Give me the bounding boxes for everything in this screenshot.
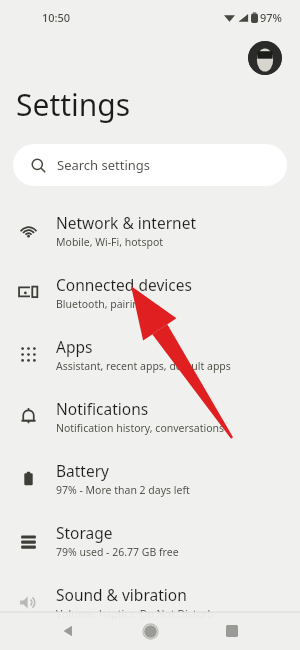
staticText: 10:50 (42, 10, 71, 25)
button[interactable]: Notifications (0, 385, 300, 447)
staticText: Bluetooth, pairing (56, 297, 146, 311)
button[interactable]: Search settings (13, 144, 287, 186)
button[interactable]: Recent apps (212, 612, 252, 650)
staticText: Settings (16, 84, 131, 125)
staticText: Sound & vibration (56, 584, 187, 605)
staticText: Apps (56, 336, 93, 357)
staticText: Connected devices (56, 274, 192, 295)
button[interactable]: Account (248, 41, 282, 75)
staticText: Search settings (57, 156, 151, 174)
staticText: 79% used - 26.77 GB free (56, 545, 179, 559)
staticText: Notification history, conversations (56, 421, 225, 435)
button[interactable]: Home (130, 612, 170, 650)
staticText: Volume, haptics, Do Not Disturb (56, 607, 214, 621)
staticText: 97% (260, 10, 282, 25)
staticText: Notifications (56, 398, 149, 419)
button[interactable]: Connected devices (0, 261, 300, 323)
staticText: 97% - More than 2 days left (56, 483, 190, 497)
staticText: Mobile, Wi-Fi, hotspot (56, 235, 164, 249)
staticText: Network & internet (56, 212, 196, 233)
button[interactable]: Storage (0, 509, 300, 571)
button[interactable]: Back (48, 612, 88, 650)
staticText: Assistant, recent apps, default apps (56, 359, 231, 373)
button[interactable]: Sound & vibration (0, 571, 300, 633)
staticText: Storage (56, 522, 113, 543)
button[interactable]: Apps (0, 323, 300, 385)
button[interactable]: Network & internet (0, 199, 300, 261)
button[interactable]: Battery (0, 447, 300, 509)
staticText: Battery (56, 460, 110, 481)
